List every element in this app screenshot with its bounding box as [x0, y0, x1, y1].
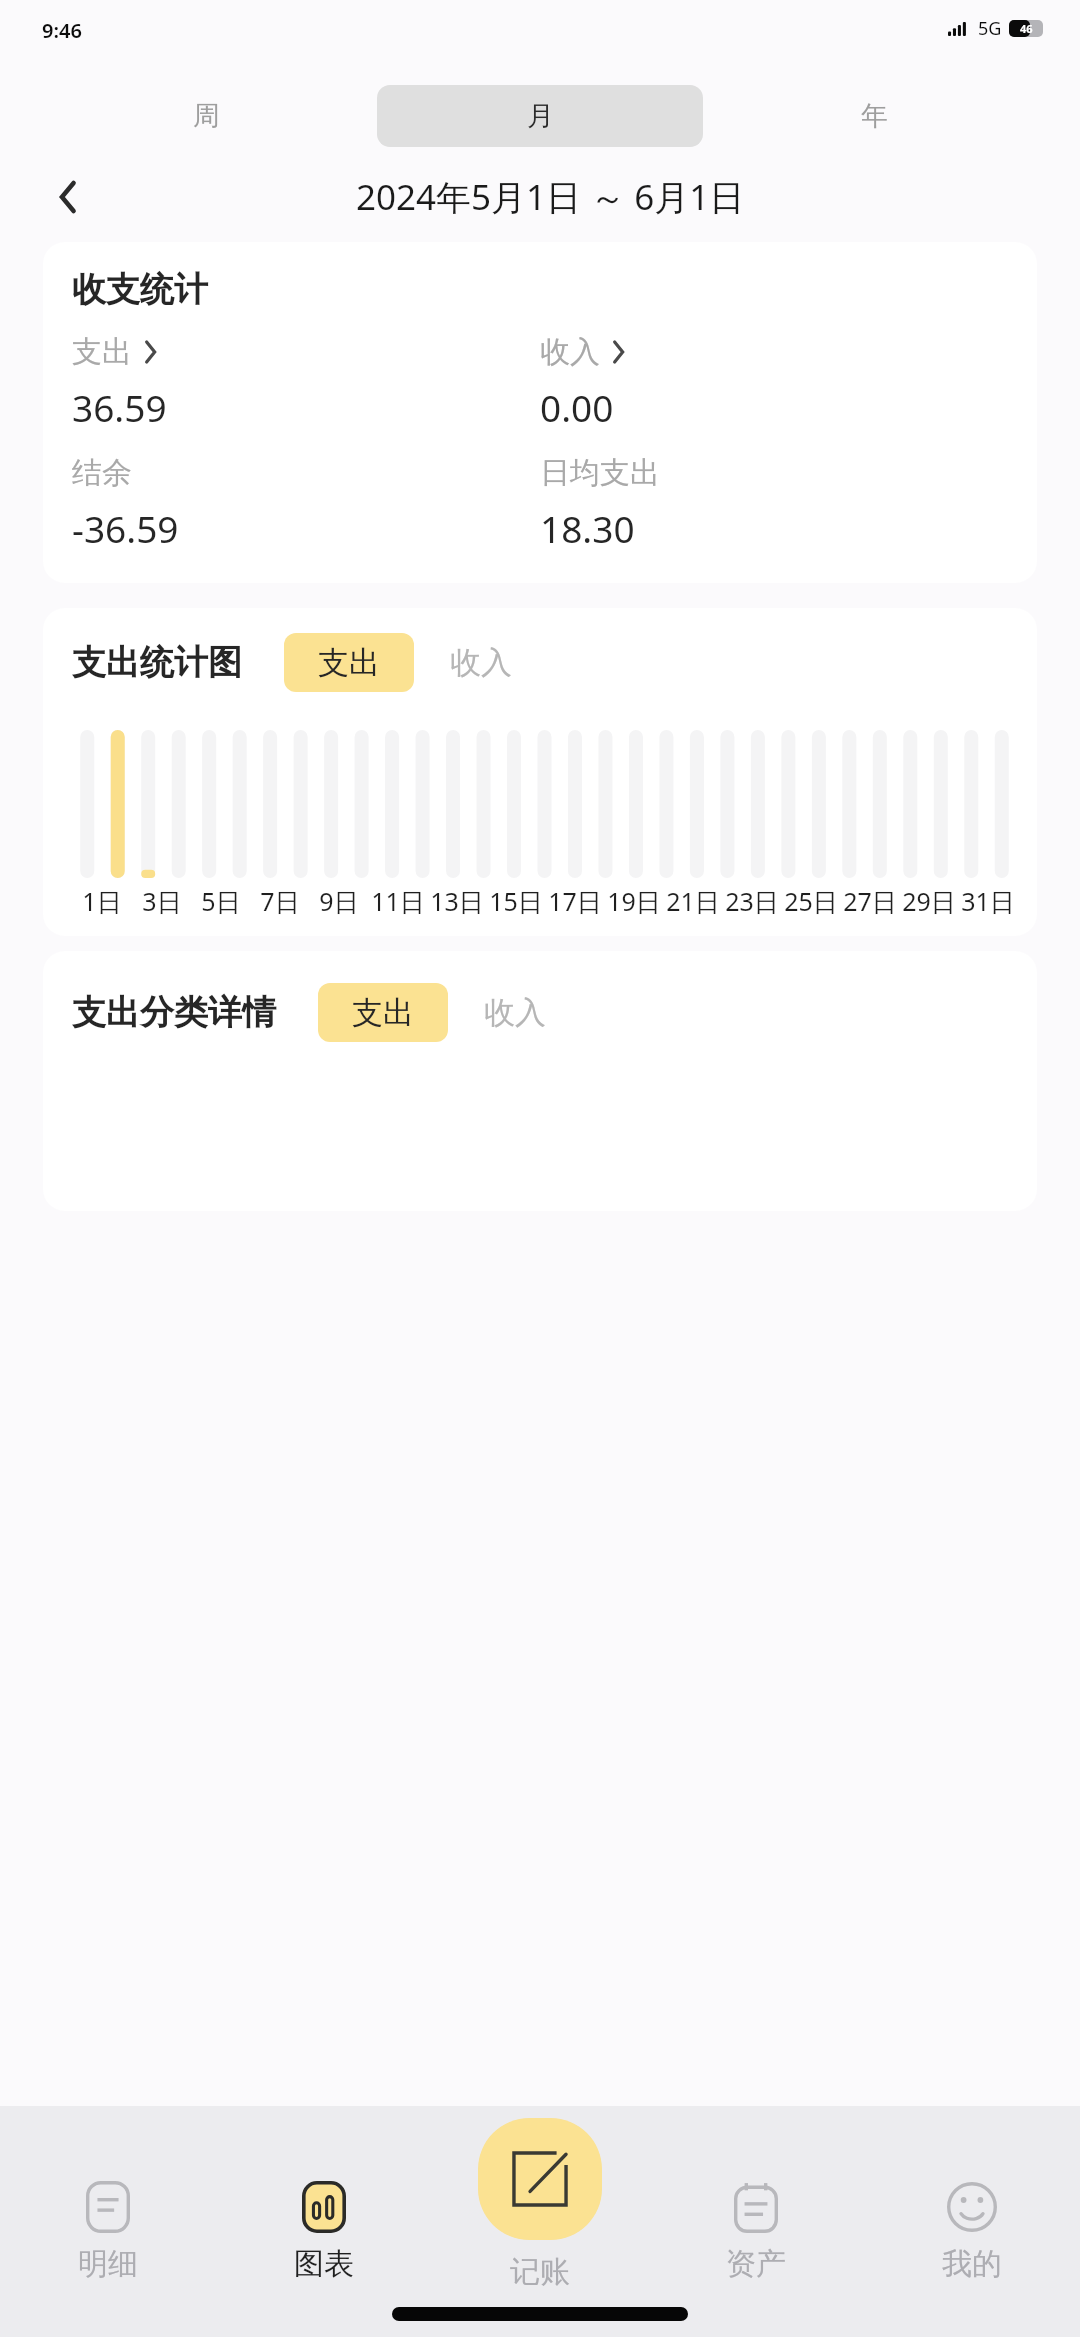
button[interactable]: 年: [711, 85, 1037, 147]
staticText: 0.00: [540, 382, 614, 432]
staticText: 支出: [72, 333, 132, 371]
button[interactable]: 月: [377, 85, 703, 147]
button[interactable]: 周: [43, 85, 369, 147]
staticText: 18.30: [540, 503, 635, 553]
staticText: 明细: [78, 2245, 138, 2283]
staticText: 9:46: [42, 17, 82, 44]
staticText: 31日: [961, 884, 1015, 918]
staticText: 25日: [784, 884, 838, 918]
button[interactable]: 资产: [648, 2181, 864, 2291]
staticText: 46: [1020, 21, 1033, 36]
button[interactable]: 收入: [440, 633, 522, 692]
staticText: 5日: [201, 884, 241, 918]
staticText: 收支统计: [72, 268, 208, 311]
staticText: 36.59: [72, 382, 167, 432]
button[interactable]: 支出: [284, 633, 414, 692]
staticText: 支出: [318, 643, 380, 682]
button[interactable]: 收支统计: [43, 242, 1037, 583]
staticText: 27日: [843, 884, 897, 918]
staticText: 11日: [371, 884, 425, 918]
staticText: 支出统计图: [72, 641, 242, 684]
staticText: 资产: [726, 2245, 786, 2283]
staticText: 5G: [978, 16, 1002, 41]
button[interactable]: 收入: [540, 333, 624, 371]
staticText: -36.59: [72, 503, 179, 553]
staticText: 收入: [540, 333, 600, 371]
staticText: 17日: [548, 884, 602, 918]
staticText: 23日: [725, 884, 779, 918]
staticText: 支出: [352, 993, 414, 1032]
staticText: 29日: [902, 884, 956, 918]
staticText: 7日: [260, 884, 300, 918]
staticText: 月: [527, 99, 554, 133]
staticText: 1日: [82, 884, 122, 918]
staticText: 2024年5月1日 ～ 6月1日: [356, 173, 745, 221]
staticText: 19日: [607, 884, 661, 918]
staticText: 3日: [142, 884, 182, 918]
staticText: 支出分类详情: [72, 991, 276, 1034]
button[interactable]: 支出: [318, 983, 448, 1042]
staticText: 13日: [430, 884, 484, 918]
staticText: 15日: [489, 884, 543, 918]
staticText: 21日: [666, 884, 720, 918]
button[interactable]: 支出: [72, 333, 156, 371]
staticText: 图表: [294, 2245, 354, 2283]
staticText: 收入: [484, 993, 546, 1032]
button[interactable]: Previous period: [46, 175, 90, 219]
button[interactable]: 收入: [474, 983, 556, 1042]
button[interactable]: 记账 Add record: [478, 2118, 602, 2240]
staticText: 日均支出: [540, 454, 660, 492]
staticText: 周: [193, 99, 220, 133]
staticText: 9日: [319, 884, 359, 918]
button[interactable]: 我的: [864, 2181, 1080, 2291]
staticText: 记账: [510, 2253, 570, 2291]
button[interactable]: 图表: [216, 2181, 432, 2291]
staticText: 年: [861, 99, 888, 133]
button[interactable]: 明细: [0, 2181, 216, 2291]
staticText: 我的: [942, 2245, 1002, 2283]
staticText: 结余: [72, 454, 132, 492]
staticText: 收入: [450, 643, 512, 682]
